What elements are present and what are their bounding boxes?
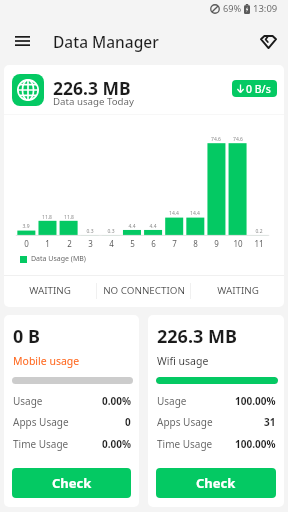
staticText: 74.6: [233, 136, 243, 143]
staticText: Usage: [13, 394, 43, 408]
staticText: 14.4: [169, 210, 179, 217]
staticText: Data Manager: [53, 31, 159, 52]
staticText: 100.00%: [235, 394, 276, 408]
staticText: 0: [24, 238, 29, 249]
button[interactable]: WAITING: [191, 275, 284, 306]
staticText: 0.00%: [102, 437, 131, 451]
staticText: 7: [172, 238, 177, 249]
button[interactable]: Menu: [7, 27, 37, 57]
staticText: 4.4: [128, 223, 136, 230]
staticText: Time Usage: [13, 437, 69, 451]
staticText: 226.3 MB: [157, 324, 237, 349]
staticText: Wifi usage: [157, 354, 209, 368]
staticText: Mobile usage: [13, 354, 80, 368]
staticText: 9: [214, 238, 219, 249]
staticText: Time Usage: [157, 437, 213, 451]
staticText: 11: [254, 238, 264, 249]
staticText: 0.3: [86, 228, 94, 235]
staticText: NO CONNECTION: [103, 284, 185, 297]
staticText: Check: [196, 474, 236, 492]
staticText: 14.4: [190, 210, 200, 217]
button[interactable]: WAITING: [4, 275, 96, 306]
staticText: 3.9: [22, 223, 30, 230]
button[interactable]: Check: [156, 468, 276, 498]
staticText: Usage: [157, 394, 187, 408]
staticText: Data Usage (MB): [31, 254, 86, 264]
staticText: 4: [109, 238, 114, 249]
staticText: 1: [45, 238, 50, 249]
staticText: 0.00%: [102, 394, 131, 408]
staticText: 0.3: [107, 228, 115, 235]
staticText: 226.3 MB: [53, 76, 131, 100]
staticText: 8: [193, 238, 198, 249]
button[interactable]: 0 B/s: [232, 80, 277, 97]
staticText: 4.4: [149, 223, 157, 230]
staticText: Data usage Today: [53, 95, 134, 108]
staticText: WAITING: [217, 284, 259, 297]
staticText: 69%: [223, 2, 242, 15]
staticText: WAITING: [29, 284, 71, 297]
staticText: 74.6: [211, 136, 221, 143]
staticText: Apps Usage: [157, 415, 213, 429]
staticText: 0 B/s: [246, 82, 271, 96]
staticText: 0.2: [255, 228, 263, 235]
staticText: 13:09: [253, 2, 278, 15]
staticText: 5: [130, 238, 135, 249]
staticText: Check: [52, 474, 92, 492]
staticText: 10: [233, 238, 243, 249]
staticText: 11.8: [64, 214, 74, 221]
button[interactable]: Check: [12, 468, 131, 498]
staticText: 0: [125, 415, 131, 429]
staticText: 100.00%: [235, 437, 276, 451]
staticText: 6: [151, 238, 156, 249]
staticText: 0 B: [13, 324, 40, 349]
staticText: Apps Usage: [13, 415, 69, 429]
button[interactable]: NO CONNECTION: [97, 275, 190, 306]
button[interactable]: Premium: [253, 27, 283, 57]
staticText: 11.8: [42, 214, 52, 221]
staticText: 31: [264, 415, 276, 429]
staticText: 2: [67, 238, 72, 249]
staticText: 3: [88, 238, 93, 249]
